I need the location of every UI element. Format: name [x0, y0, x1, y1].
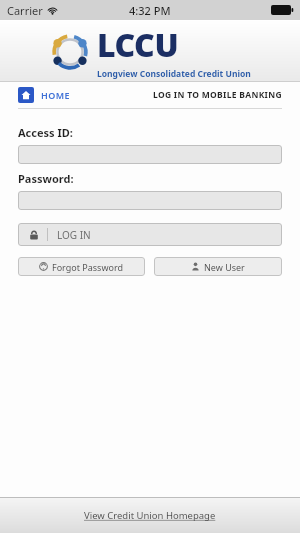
staticText: New User: [204, 261, 245, 273]
staticText: Carrier: [7, 3, 43, 18]
button[interactable]: [18, 191, 282, 210]
button[interactable]: LOG IN: [18, 223, 282, 246]
staticText: Forgot Password: [52, 261, 124, 273]
staticText: HOME: [41, 89, 70, 101]
button[interactable]: View Credit Union Homepage: [76, 505, 224, 526]
button[interactable]: HOME: [18, 85, 70, 105]
staticText: 4:32 PM: [129, 3, 171, 18]
staticText: Password:: [18, 171, 74, 186]
staticText: LOG IN TO MOBILE BANKING: [153, 89, 282, 101]
staticText: Access ID:: [18, 125, 73, 140]
staticText: Longview Consolidated Credit Union: [97, 68, 251, 80]
button[interactable]: [18, 145, 282, 164]
button[interactable]: Forgot Password: [18, 257, 145, 276]
staticText: LOG IN: [57, 228, 91, 242]
staticText: LCCU: [97, 23, 179, 67]
button[interactable]: New User: [154, 257, 282, 276]
